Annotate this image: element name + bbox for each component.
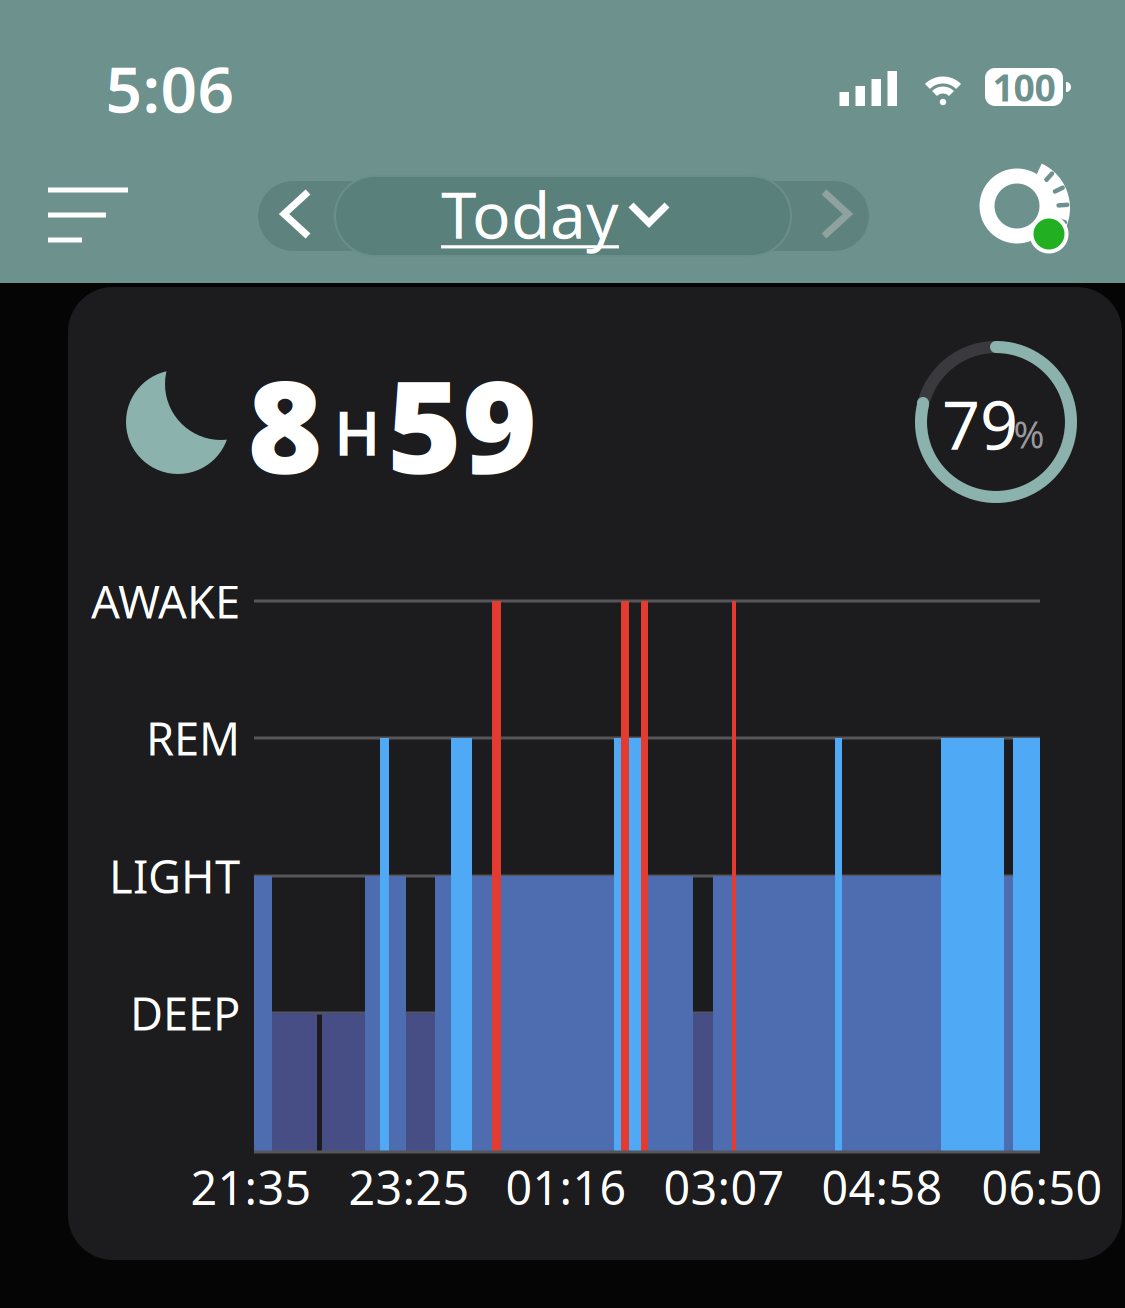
staticText: 23:25 — [348, 1156, 469, 1218]
button[interactable]: Menu — [48, 187, 128, 242]
staticText: REM — [146, 708, 240, 768]
button[interactable]: Device status — [975, 158, 1075, 258]
staticText: 8 — [247, 339, 322, 509]
staticText: H — [334, 391, 380, 473]
staticText: LIGHT — [109, 846, 240, 906]
button[interactable]: Next day — [824, 192, 848, 236]
staticText: 06:50 — [981, 1156, 1102, 1218]
button[interactable]: Previous day — [284, 192, 308, 236]
staticText: 79 — [942, 380, 1018, 468]
staticText: 5:06 — [105, 45, 234, 130]
staticText: Today — [441, 171, 619, 256]
staticText: % — [1013, 409, 1044, 459]
staticText: 04:58 — [821, 1156, 942, 1218]
staticText: 03:07 — [663, 1156, 784, 1218]
button[interactable]: Today — [441, 171, 667, 256]
staticText: 100 — [992, 62, 1055, 112]
staticText: 21:35 — [190, 1156, 311, 1218]
staticText: 59 — [387, 339, 537, 509]
staticText: 01:16 — [505, 1156, 626, 1218]
staticText: AWAKE — [91, 571, 240, 631]
staticText: DEEP — [130, 983, 240, 1043]
